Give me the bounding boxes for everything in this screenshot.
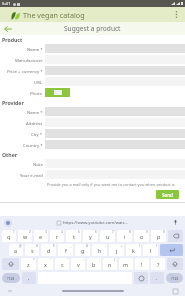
button[interactable]: More options [170, 8, 183, 21]
button[interactable]: Add photo [45, 88, 70, 97]
button[interactable]: a [9, 244, 23, 256]
staticText: 1 [13, 230, 15, 234]
button[interactable]: s [25, 244, 39, 256]
staticText: City * [31, 131, 43, 137]
button[interactable]: f [58, 244, 73, 256]
button[interactable]: h [92, 244, 107, 256]
button[interactable]: Enter [160, 244, 183, 256]
staticText: p [157, 233, 161, 240]
staticText: 5:41 [2, 1, 11, 7]
staticText: ; [99, 258, 100, 262]
staticText: Product [2, 36, 23, 43]
button[interactable]: Shift [167, 258, 183, 270]
button[interactable]: w [18, 230, 32, 242]
staticText: ? [157, 261, 160, 268]
staticText: - [105, 244, 106, 248]
button[interactable]: , [22, 272, 36, 284]
staticText: * [33, 258, 35, 262]
button[interactable]: ? [151, 258, 165, 270]
staticText: Address [26, 120, 43, 126]
button[interactable]: z [21, 258, 36, 270]
staticText: The vegan catalog [23, 10, 85, 20]
button[interactable]: n [103, 258, 117, 270]
button[interactable]: m [119, 258, 133, 270]
button[interactable]: Hide keyboard [171, 287, 179, 295]
staticText: _ [70, 244, 72, 248]
button[interactable]: Back [6, 287, 14, 295]
button[interactable]: l [143, 244, 158, 256]
staticText: a [14, 247, 18, 254]
button[interactable]: k [126, 244, 141, 256]
staticText: / [114, 258, 116, 262]
button[interactable]: q [2, 230, 16, 242]
button[interactable]: Shift [2, 258, 19, 270]
button[interactable]: Send [156, 190, 179, 199]
button[interactable]: o [134, 230, 149, 242]
staticText: : [83, 258, 84, 262]
button[interactable]: g [75, 244, 90, 256]
staticText: https://www.youtube.com/watc... [63, 220, 129, 226]
button[interactable]: t [66, 230, 81, 242]
button[interactable]: Symbols [166, 273, 183, 283]
staticText: w [23, 233, 28, 240]
staticText: Suggest a product [64, 24, 121, 33]
button[interactable]: https://www.youtube.com/watc... [57, 220, 129, 226]
staticText: , [28, 275, 30, 282]
button[interactable]: . [150, 272, 164, 284]
staticText: Send [162, 192, 173, 198]
staticText: f [65, 247, 67, 254]
button[interactable]: Symbols [2, 273, 20, 283]
staticText: 8 [129, 230, 131, 234]
staticText: ! [141, 261, 143, 268]
staticText: z [27, 261, 30, 268]
staticText: ) [156, 244, 157, 248]
staticText: t [73, 233, 75, 240]
staticText: Provide you a mail only if you want me t… [47, 182, 185, 187]
staticText: @ [19, 244, 22, 248]
button[interactable]: v [71, 258, 85, 270]
button[interactable]: Voice input [171, 218, 180, 227]
button[interactable]: Emoji [134, 272, 148, 284]
staticText: . [156, 275, 158, 282]
button[interactable]: e [34, 230, 48, 242]
staticText: 4 [61, 230, 63, 234]
staticText: Country * [23, 142, 43, 148]
staticText: x [44, 261, 47, 268]
staticText: 2 [29, 230, 31, 234]
button[interactable]: b [87, 258, 101, 270]
staticText: u [106, 233, 110, 240]
staticText: v [77, 261, 80, 268]
staticText: s [31, 247, 34, 254]
staticText: 0 [163, 230, 165, 234]
button[interactable]: x [38, 258, 53, 270]
button[interactable]: i [117, 230, 132, 242]
button[interactable]: r [50, 230, 64, 242]
button[interactable]: Assistant [4, 219, 12, 227]
staticText: q [7, 233, 11, 240]
staticText: " [50, 258, 52, 262]
button[interactable]: d [41, 244, 56, 256]
staticText: 7 [112, 230, 114, 234]
staticText: Name * [27, 46, 43, 52]
button[interactable]: j [109, 244, 124, 256]
button[interactable]: u [100, 230, 115, 242]
button[interactable]: c [55, 258, 69, 270]
button[interactable]: ! [135, 258, 149, 270]
staticText: l [150, 247, 152, 254]
button[interactable]: Backspace [168, 230, 183, 242]
button[interactable]: y [83, 230, 98, 242]
button[interactable]: p [151, 230, 166, 242]
button[interactable]: Back [1, 22, 14, 35]
staticText: ?123 [7, 276, 15, 281]
